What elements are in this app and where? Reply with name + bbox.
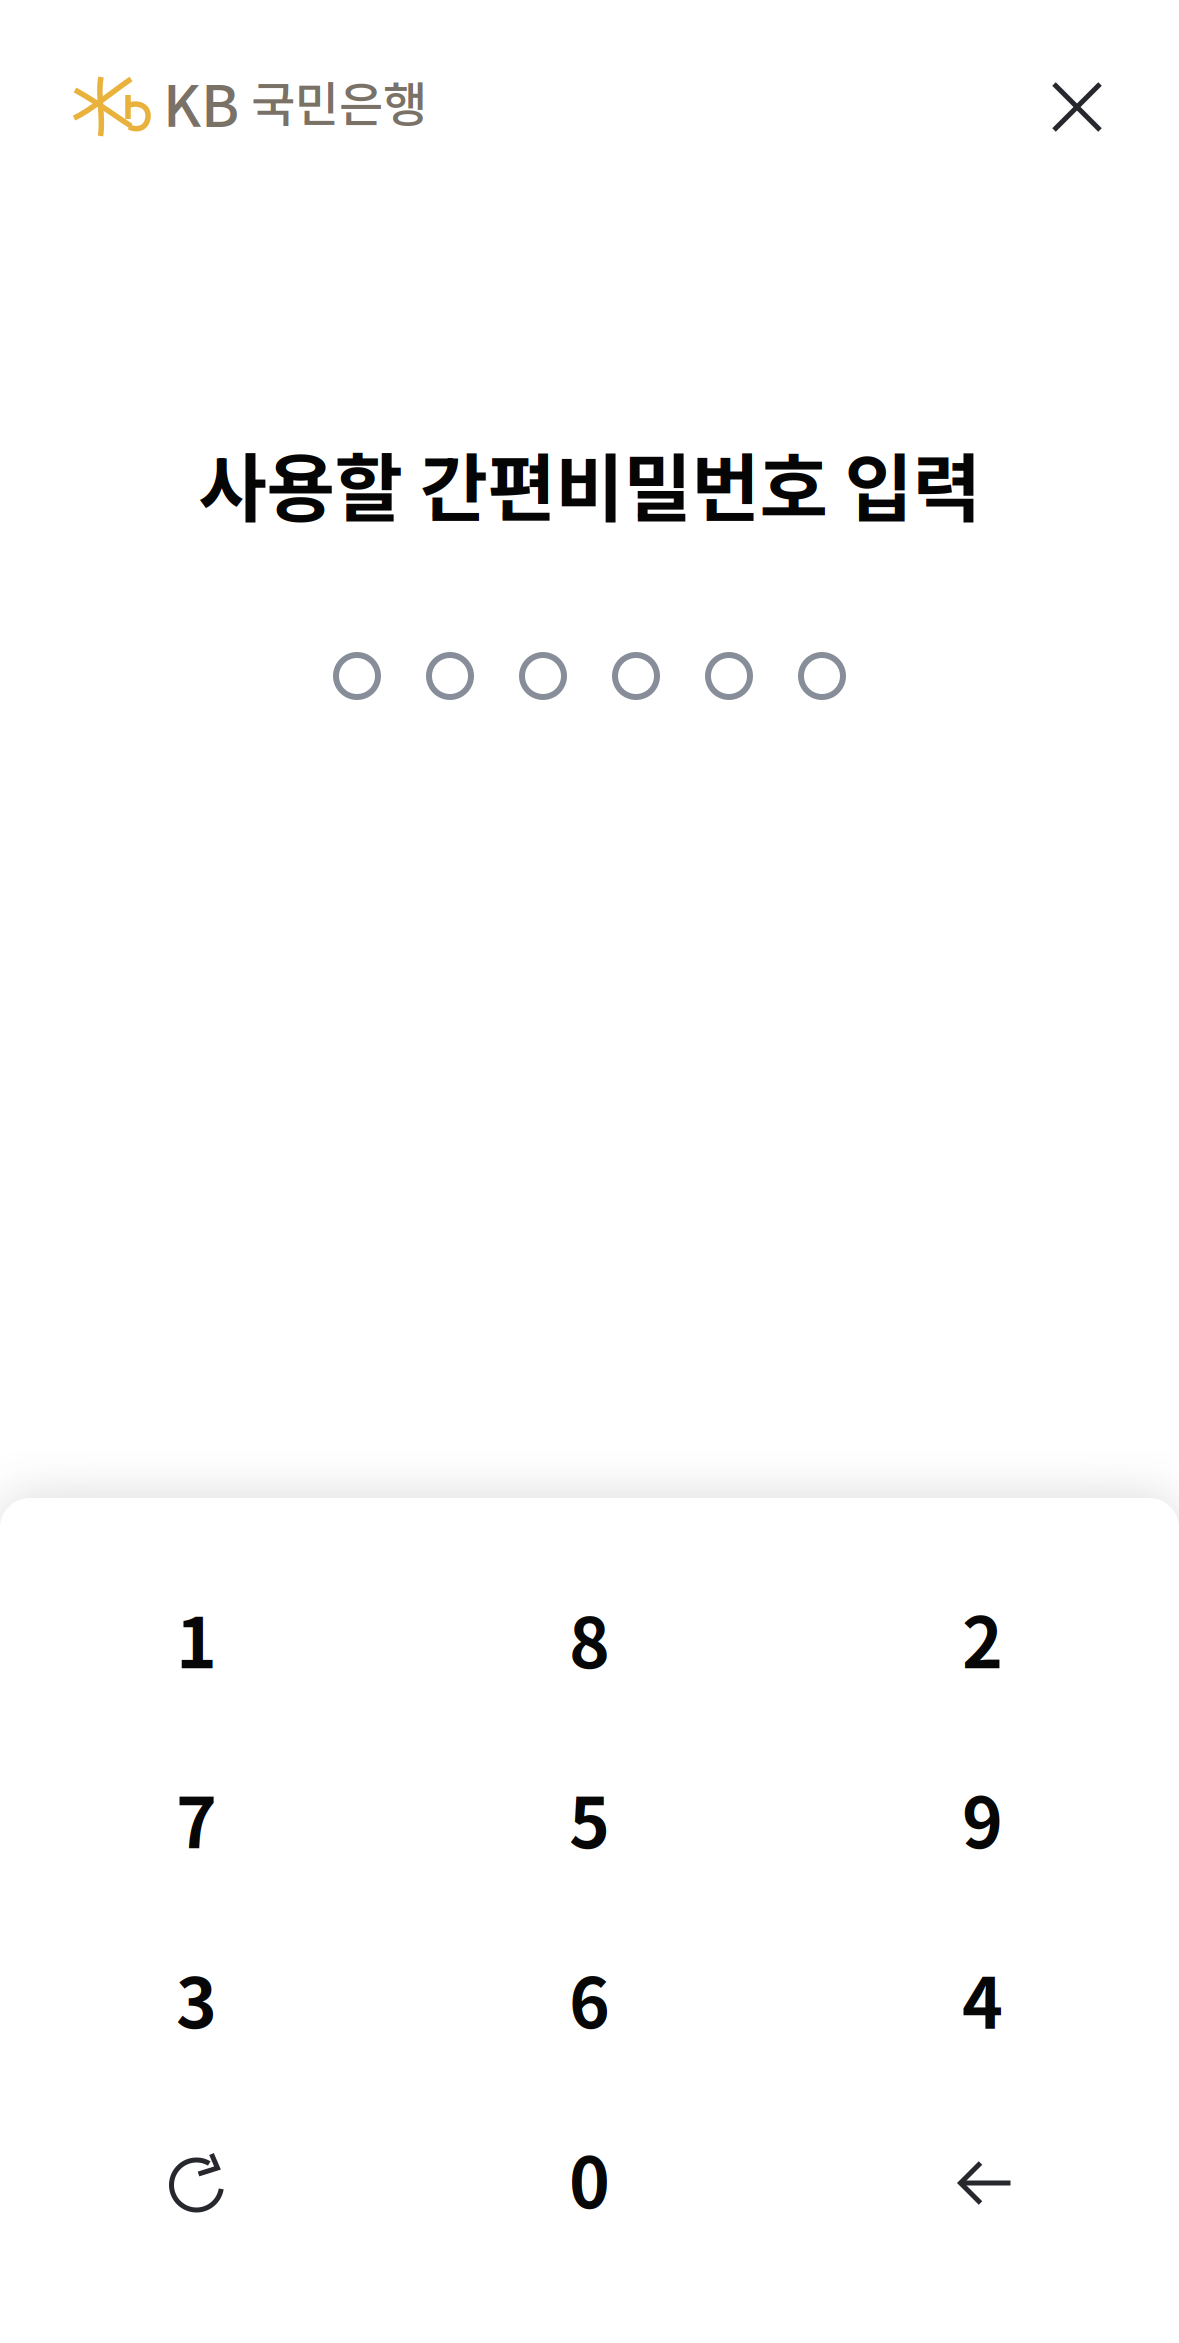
staticText: KB: [163, 60, 239, 143]
staticText: 0: [569, 2128, 610, 2228]
button[interactable]: KB 국민은행: [72, 51, 443, 162]
button[interactable]: 7: [0, 1728, 393, 1908]
staticText: 5: [569, 1768, 610, 1868]
staticText: 사용할 간편비밀번호 입력: [198, 429, 980, 537]
staticText: 8: [569, 1588, 610, 1688]
button[interactable]: 6: [393, 1908, 786, 2088]
button[interactable]: 8: [393, 1548, 786, 1728]
button[interactable]: 1: [0, 1548, 393, 1728]
staticText: 2: [962, 1588, 1003, 1688]
staticText: 7: [176, 1768, 217, 1868]
button[interactable]: 2: [786, 1548, 1179, 1728]
button[interactable]: 4: [786, 1908, 1179, 2088]
button[interactable]: 지우기: [786, 2088, 1179, 2268]
button[interactable]: 9: [786, 1728, 1179, 1908]
staticText: 6: [569, 1948, 610, 2048]
staticText: 4: [962, 1948, 1003, 2048]
button[interactable]: 3: [0, 1908, 393, 2088]
staticText: 국민은행: [251, 66, 427, 136]
staticText: 3: [176, 1948, 217, 2048]
button[interactable]: 다시 섞기: [0, 2088, 393, 2268]
staticText: 9: [962, 1768, 1003, 1868]
button[interactable]: 0: [393, 2088, 786, 2268]
button[interactable]: 닫기: [1033, 63, 1121, 151]
button[interactable]: 5: [393, 1728, 786, 1908]
staticText: 1: [176, 1588, 217, 1688]
